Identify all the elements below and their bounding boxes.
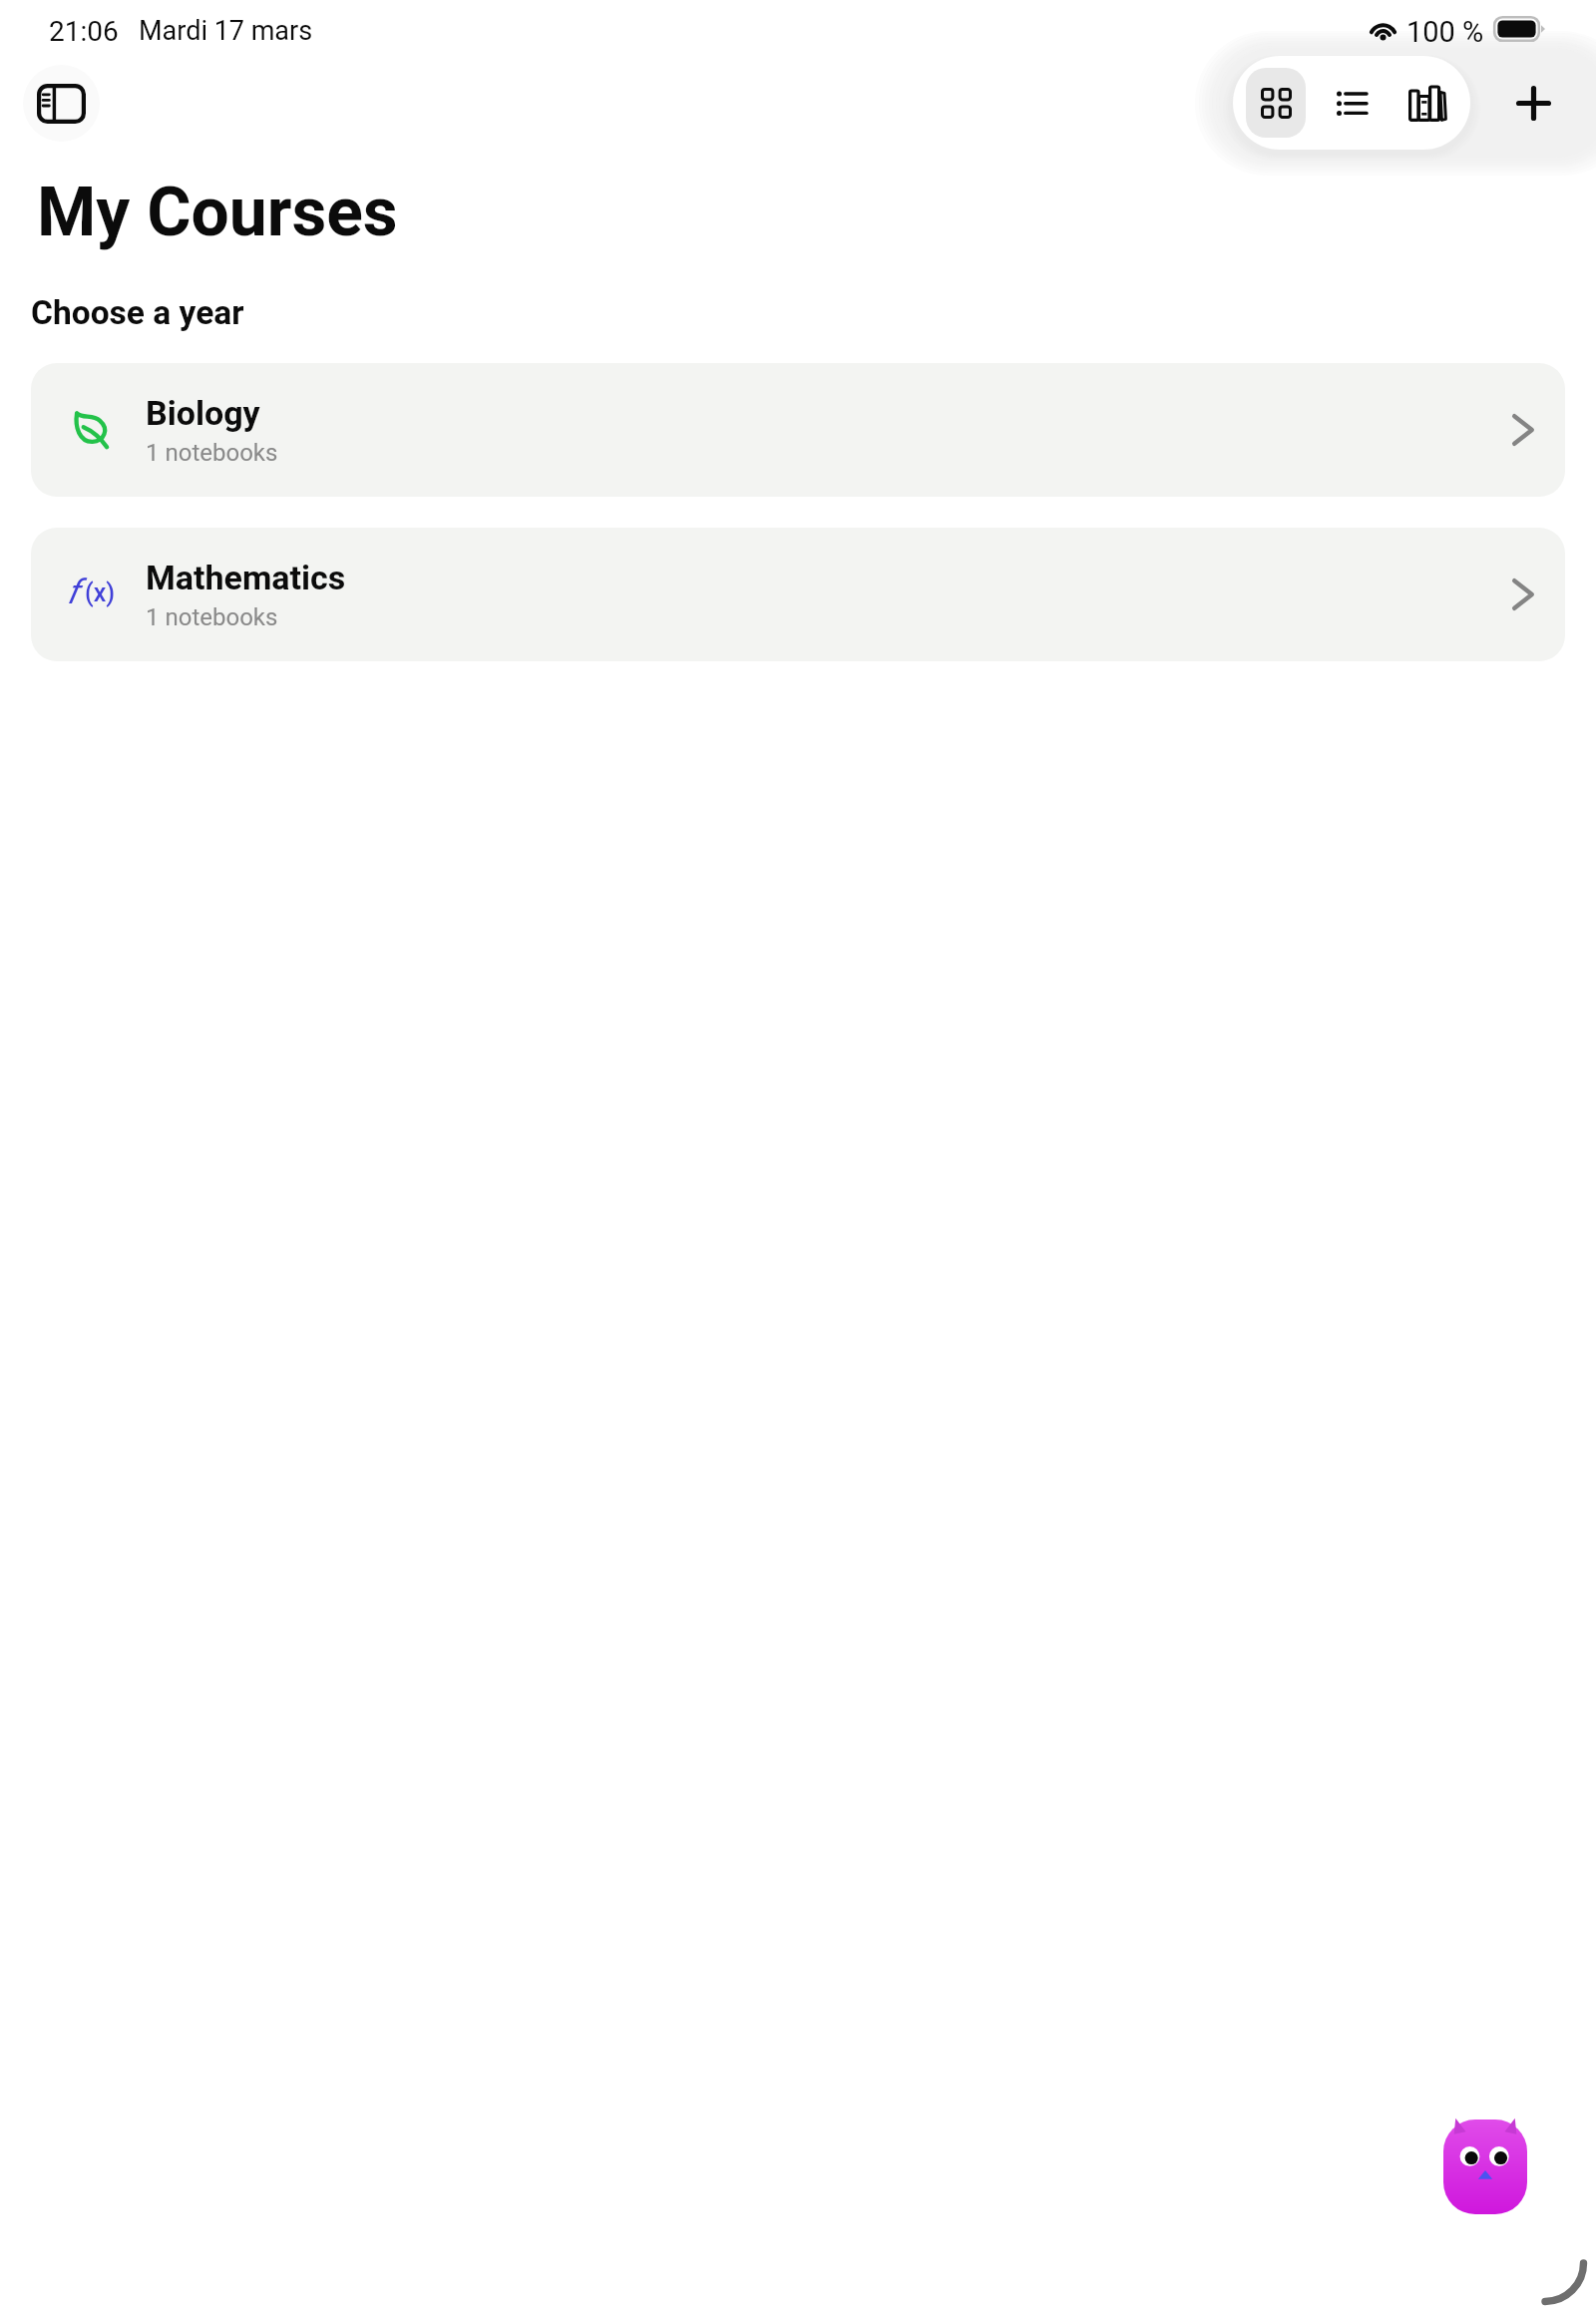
button[interactable]: Assistant bbox=[1443, 2114, 1527, 2214]
button[interactable]: Toggle sidebar bbox=[23, 65, 100, 142]
staticText: f bbox=[67, 572, 79, 611]
staticText: 100 % bbox=[1406, 15, 1484, 49]
staticText: Choose a year bbox=[31, 293, 244, 332]
staticText: 1 notebooks bbox=[146, 603, 278, 631]
button[interactable]: List view bbox=[1317, 68, 1387, 139]
staticText: My Courses bbox=[37, 173, 398, 251]
staticText: 1 notebooks bbox=[146, 439, 278, 467]
button[interactable]: Add bbox=[1488, 58, 1578, 148]
staticText: (x) bbox=[85, 579, 116, 607]
staticText: Biology bbox=[146, 393, 260, 433]
staticText: Mardi 17 mars bbox=[139, 15, 313, 47]
button[interactable]: Biology bbox=[31, 363, 1565, 497]
button[interactable]: f bbox=[31, 528, 1565, 661]
button[interactable]: Library view bbox=[1394, 68, 1461, 139]
staticText: Mathematics bbox=[146, 558, 346, 597]
staticText: 21:06 bbox=[49, 15, 119, 48]
button[interactable]: Grid view bbox=[1246, 68, 1306, 138]
